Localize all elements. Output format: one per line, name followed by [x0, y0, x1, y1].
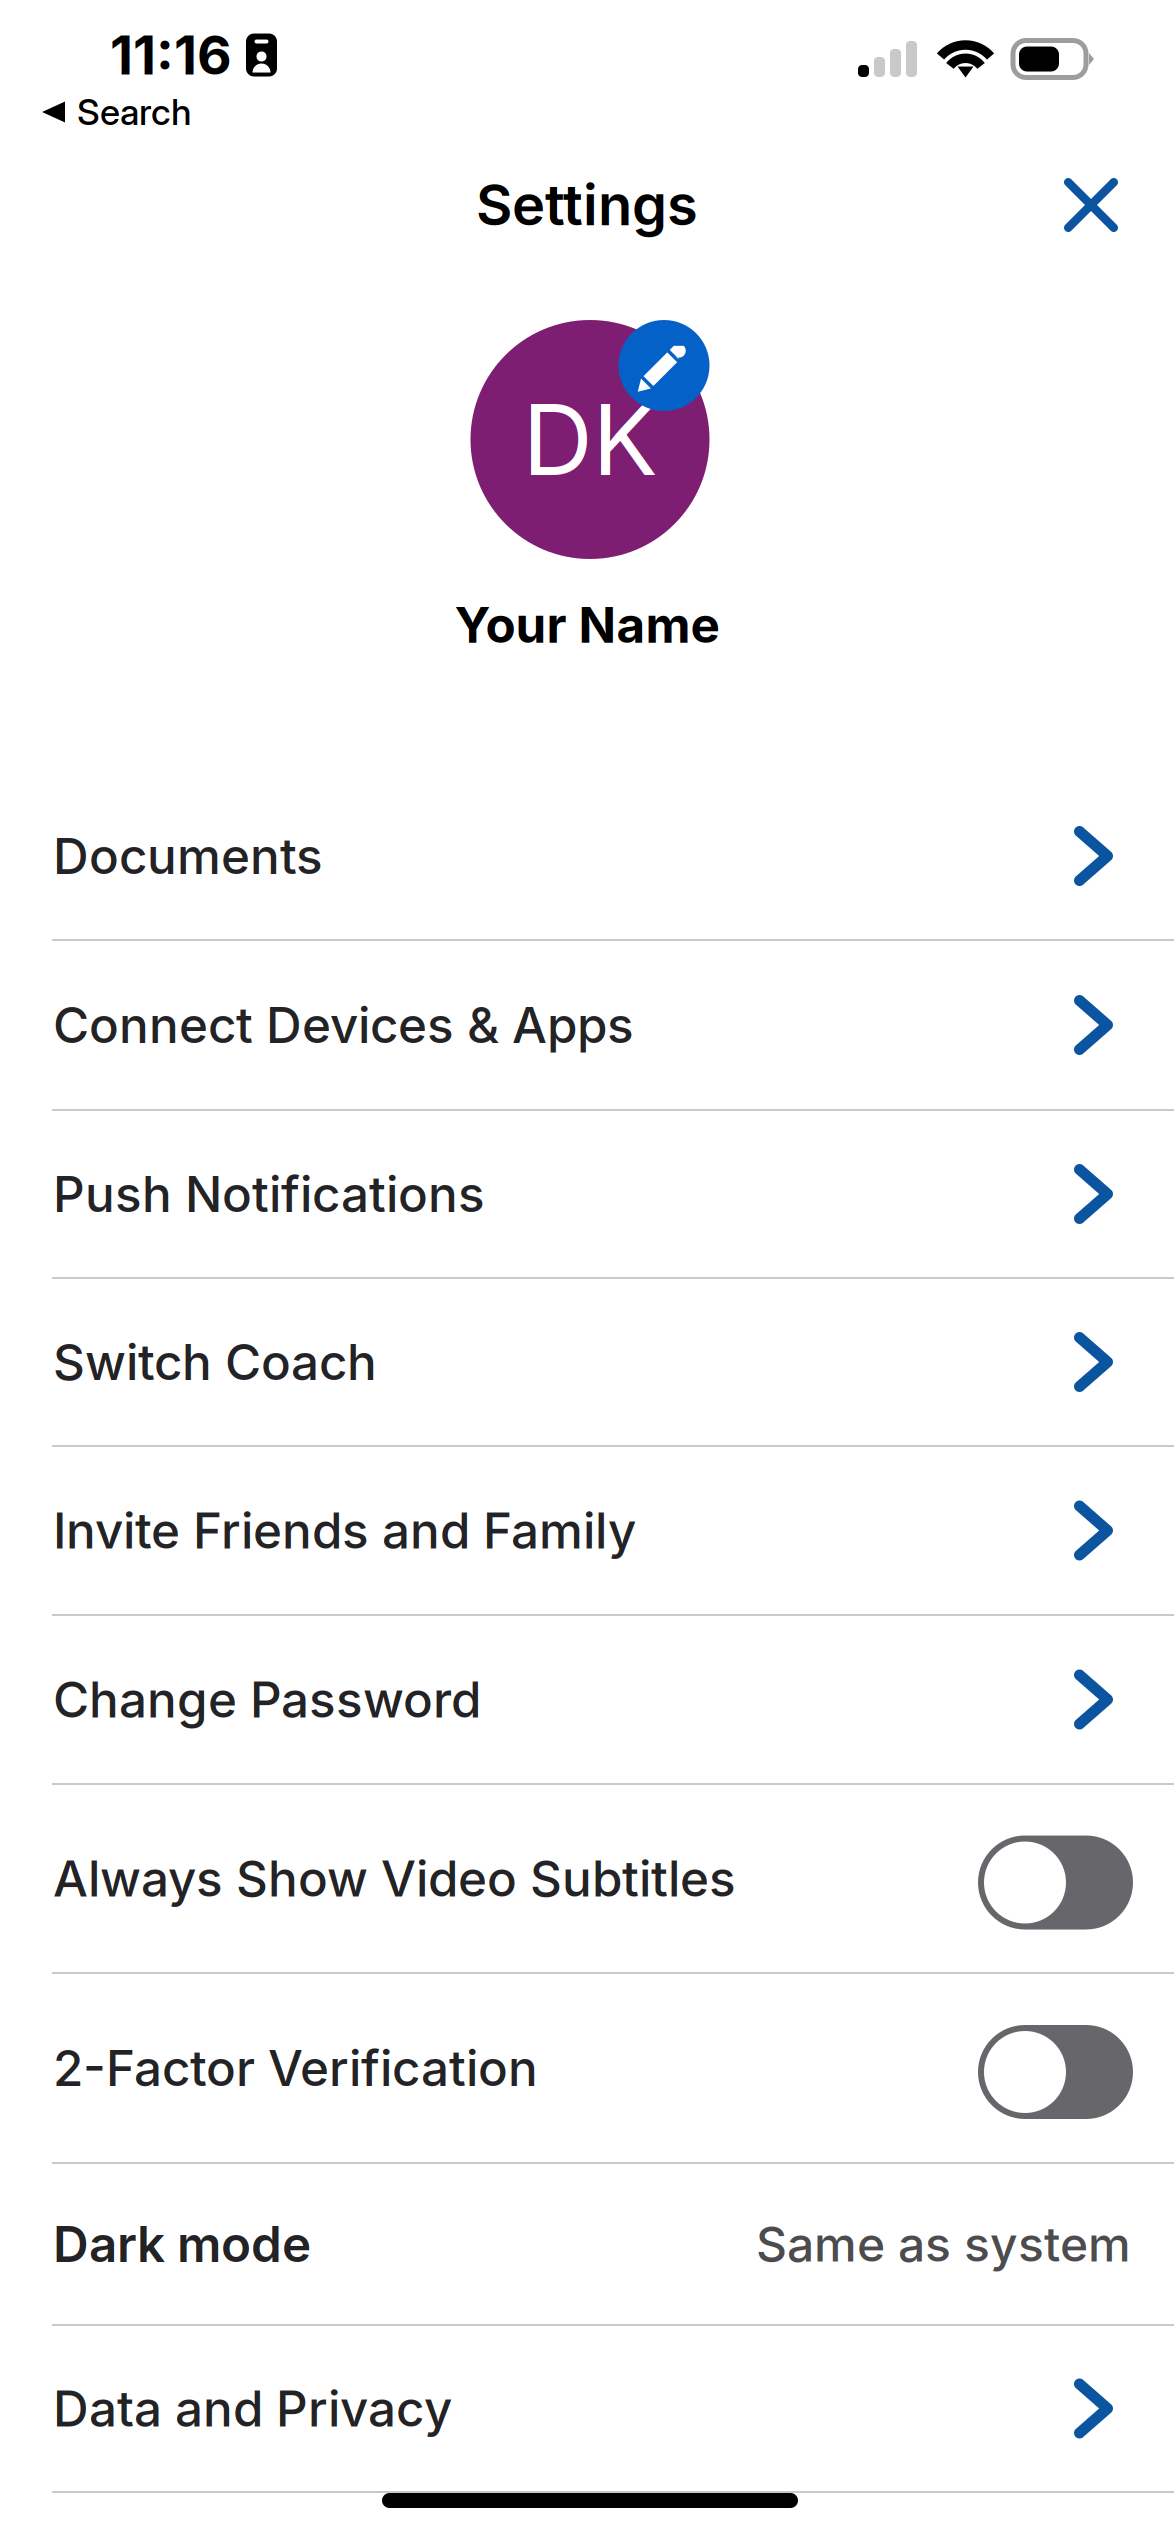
staticText: Switch Coach: [53, 1332, 377, 1392]
staticText: Documents: [53, 826, 323, 886]
staticText: Dark mode: [53, 2214, 311, 2274]
button[interactable]: Documents: [0, 773, 1174, 939]
button[interactable]: Data and Privacy: [0, 2326, 1174, 2491]
staticText: Search: [77, 90, 192, 134]
staticText: Always Show Video Subtitles: [53, 1849, 736, 1908]
staticText: Data and Privacy: [53, 2379, 452, 2438]
staticText: Invite Friends and Family: [53, 1501, 636, 1560]
staticText: Settings: [476, 171, 698, 239]
button[interactable]: Close: [1036, 150, 1146, 260]
button[interactable]: Always Show Video Subtitles: [0, 1785, 1174, 1972]
button[interactable]: 2-Factor Verification: [0, 1974, 1174, 2162]
staticText: Your Name: [454, 595, 719, 655]
staticText: 11:16: [110, 23, 232, 87]
button[interactable]: Edit profile picture: [618, 320, 709, 411]
button[interactable]: Change Password: [0, 1616, 1174, 1783]
staticText: DK: [522, 381, 657, 498]
button[interactable]: Invite Friends and Family: [0, 1447, 1174, 1614]
button[interactable]: Switch Coach: [0, 1279, 1174, 1445]
staticText: Same as system: [756, 2215, 1131, 2273]
staticText: Change Password: [53, 1670, 481, 1729]
staticText: Connect Devices & Apps: [53, 995, 634, 1055]
staticText: 2-Factor Verification: [53, 2038, 538, 2098]
button[interactable]: Dark mode: [0, 2164, 1174, 2324]
staticText: Push Notifications: [53, 1164, 485, 1224]
button[interactable]: Search: [0, 91, 204, 133]
button[interactable]: Push Notifications: [0, 1111, 1174, 1277]
button[interactable]: Connect Devices & Apps: [0, 941, 1174, 1109]
